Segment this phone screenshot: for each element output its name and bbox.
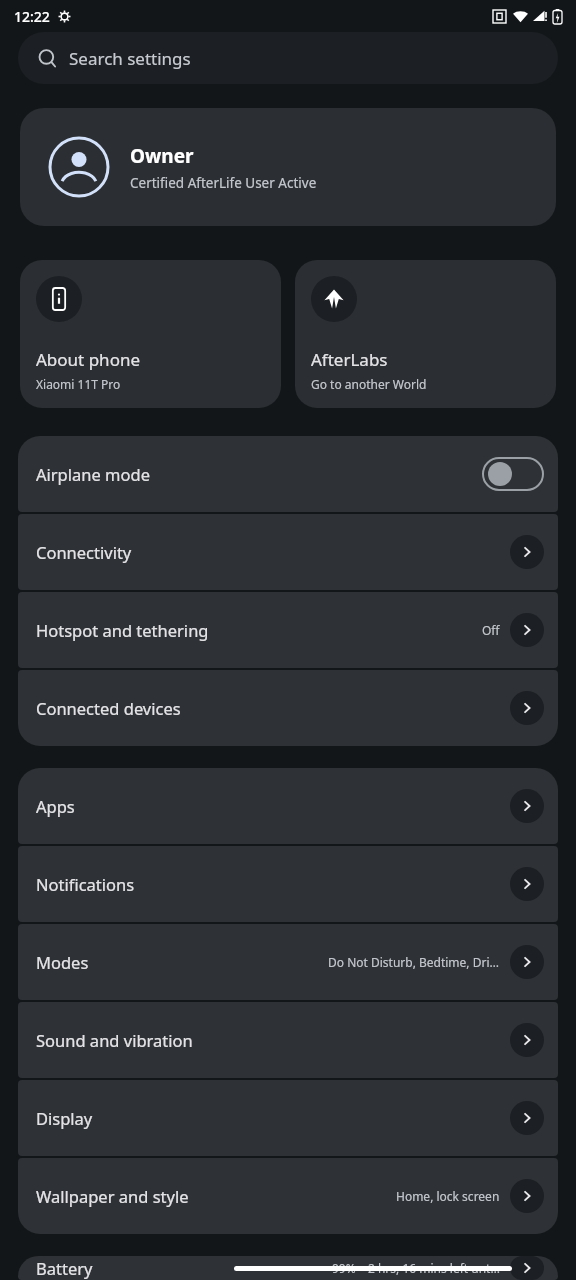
staticText: Owner — [130, 143, 194, 169]
staticText: Wallpaper and style — [36, 1185, 189, 1207]
staticText: Xiaomi 11T Pro — [36, 376, 121, 392]
staticText: Airplane mode — [36, 463, 150, 485]
staticText: About phone — [36, 348, 141, 371]
staticText: Do Not Disturb, Bedtime, Dri… — [328, 954, 500, 970]
button[interactable]: AfterLabs — [295, 260, 556, 408]
staticText: Notifications — [36, 873, 135, 895]
button[interactable]: Hotspot and tethering — [18, 592, 558, 668]
staticText: Display — [36, 1107, 93, 1129]
button[interactable]: Search settings — [18, 32, 558, 84]
staticText: Modes — [36, 951, 89, 973]
staticText: Hotspot and tethering — [36, 619, 209, 641]
staticText: Off — [482, 622, 500, 638]
staticText: Connectivity — [36, 541, 132, 563]
staticText: Search settings — [69, 47, 191, 70]
button[interactable]: Owner — [20, 108, 556, 226]
staticText: AfterLabs — [311, 348, 388, 371]
button[interactable]: About phone — [20, 260, 281, 408]
button[interactable]: Sound and vibration — [18, 1002, 558, 1078]
button[interactable]: Display — [18, 1080, 558, 1156]
button[interactable]: Airplane mode — [18, 436, 558, 512]
button[interactable]: Modes — [18, 924, 558, 1000]
button[interactable]: Wallpaper and style — [18, 1158, 558, 1234]
staticText: Go to another World — [311, 376, 427, 392]
staticText: Certified AfterLife User Active — [130, 174, 317, 192]
button[interactable]: Connected devices — [18, 670, 558, 746]
button[interactable]: Notifications — [18, 846, 558, 922]
staticText: 99% – 2 hrs, 16 mins left unt… — [332, 1260, 500, 1276]
button[interactable] — [482, 457, 544, 491]
staticText: Battery — [36, 1257, 93, 1279]
staticText: Home, lock screen — [396, 1188, 500, 1204]
staticText: Sound and vibration — [36, 1029, 193, 1051]
staticText: Connected devices — [36, 697, 181, 719]
staticText: Apps — [36, 795, 75, 817]
button[interactable]: Connectivity — [18, 514, 558, 590]
button[interactable]: Apps — [18, 768, 558, 844]
staticText: 12:22 — [14, 7, 50, 26]
button[interactable]: Battery — [18, 1256, 558, 1280]
